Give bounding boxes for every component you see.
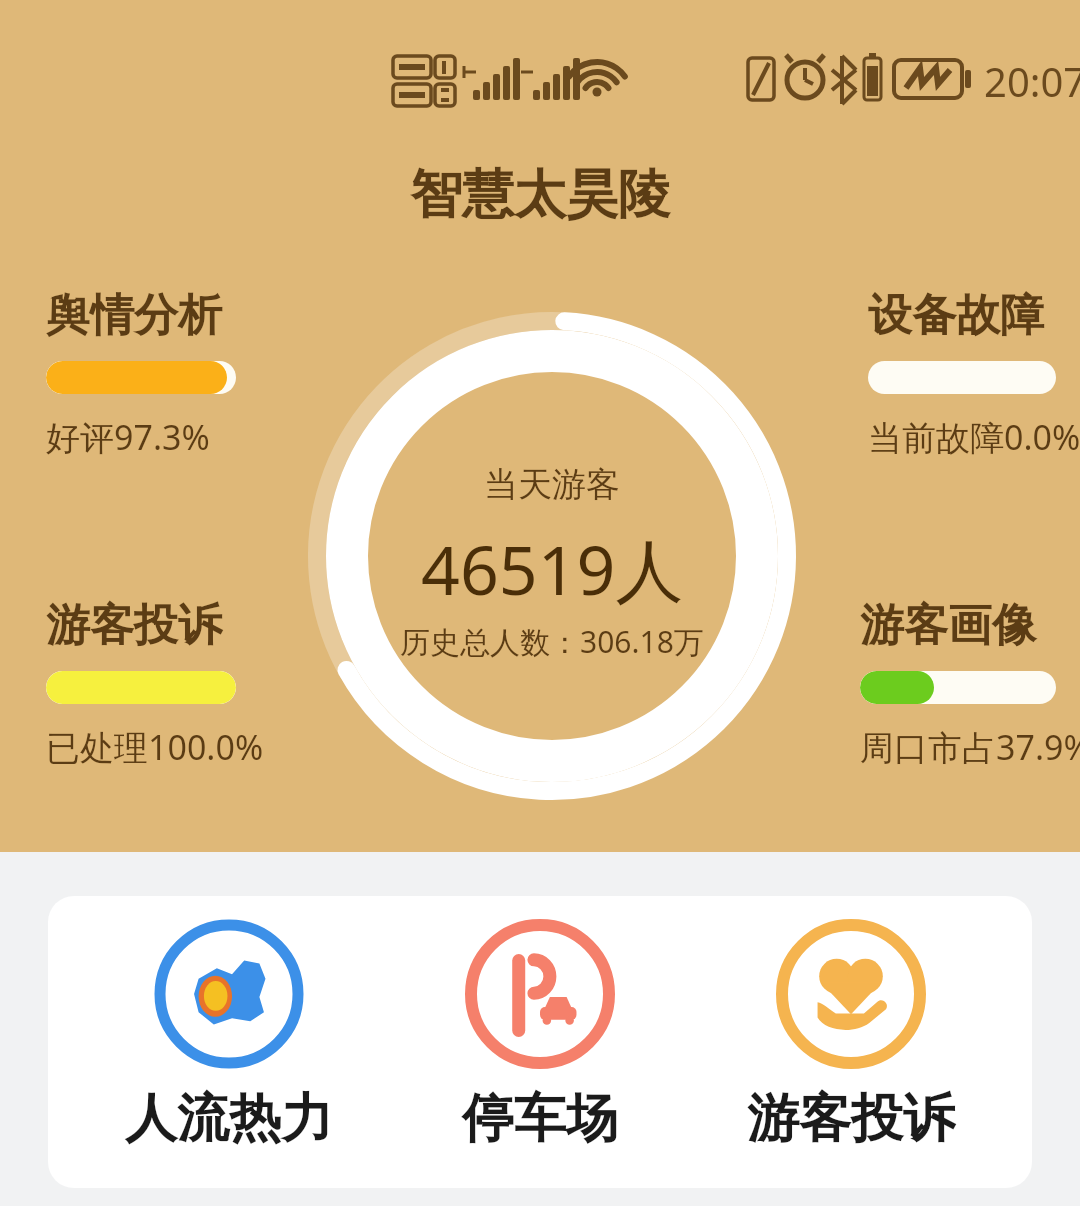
staticText: 周口市占37.9% [860, 724, 1080, 770]
staticText: 人流热力 [99, 1086, 359, 1152]
staticText: 历史总人数：306.18万 [400, 621, 704, 662]
staticText: 设备故障 [868, 288, 1044, 343]
button[interactable]: 游客画像 [860, 598, 1080, 770]
button[interactable]: 游客投诉 [46, 598, 264, 770]
staticText: 当天游客 [484, 463, 620, 506]
staticText: 当前故障0.0% [868, 414, 1080, 460]
button[interactable]: 游客投诉 [721, 912, 981, 1152]
other: 停车场 [464, 918, 616, 1070]
staticText: 游客投诉 [721, 1086, 981, 1152]
other: 游客投诉 [775, 918, 927, 1070]
button[interactable]: 停车场 [410, 912, 670, 1152]
staticText: 停车场 [410, 1086, 670, 1152]
button[interactable]: 舆情分析 [46, 288, 236, 460]
staticText: 20:07 [984, 54, 1080, 108]
button[interactable]: 设备故障 [868, 288, 1080, 460]
staticText: 好评97.3% [46, 414, 210, 460]
staticText: 智慧太昊陵 [0, 162, 1080, 228]
staticText: 46519人 [421, 522, 684, 615]
staticText: 游客画像 [860, 598, 1036, 653]
other: 人流热力 [153, 918, 305, 1070]
staticText: 游客投诉 [46, 598, 222, 653]
button[interactable]: 人流热力 [99, 912, 359, 1152]
staticText: 已处理100.0% [46, 724, 264, 770]
staticText: 舆情分析 [46, 288, 222, 343]
